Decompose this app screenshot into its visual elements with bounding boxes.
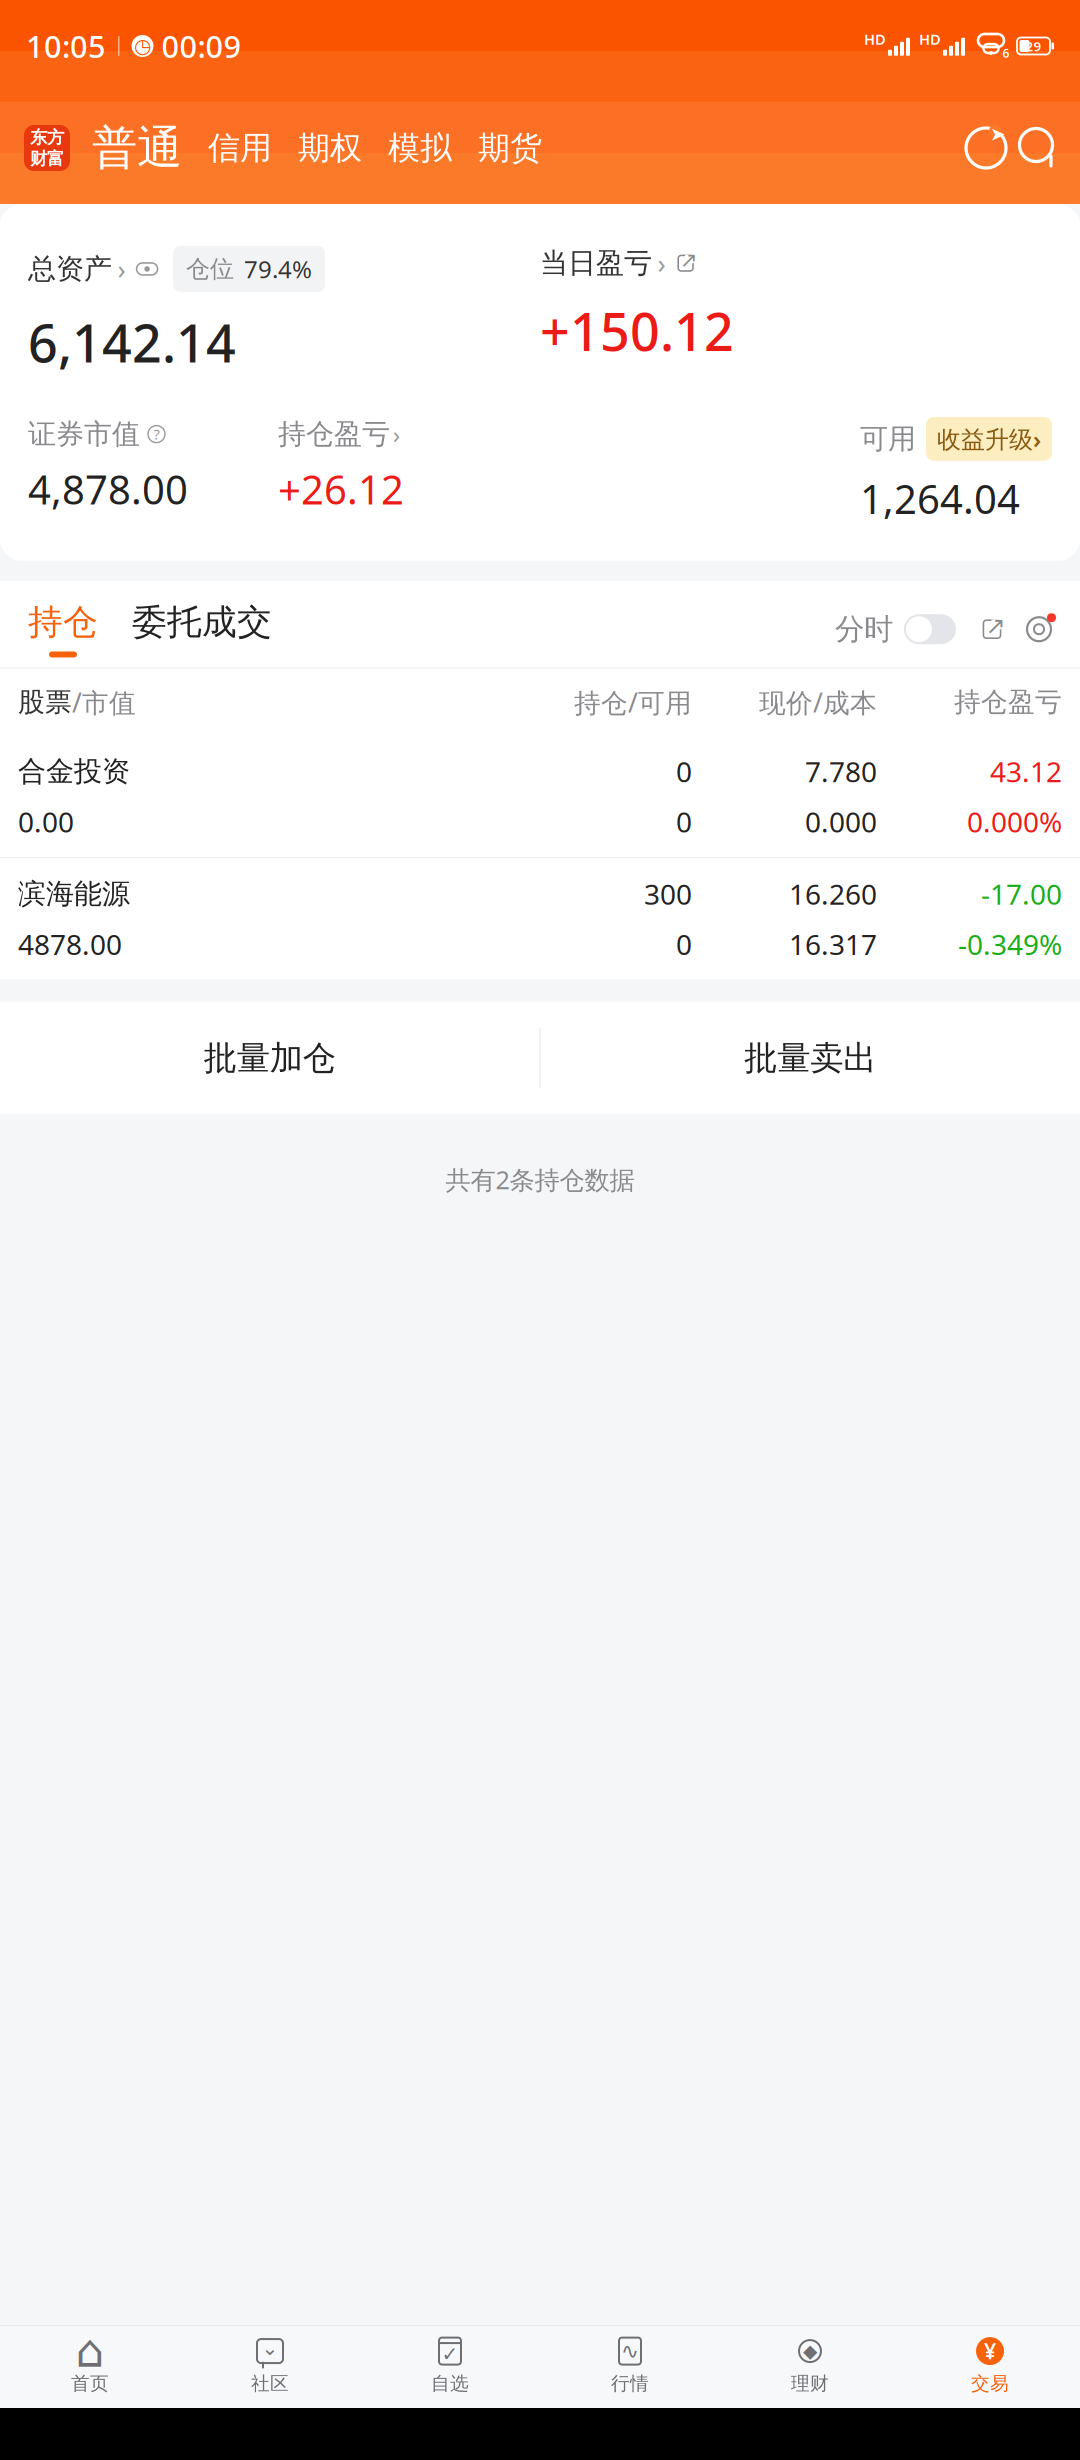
staticText: 股票 — [18, 686, 72, 719]
staticText: 当日盈亏 — [540, 246, 652, 280]
button[interactable]: 分时 — [835, 611, 956, 647]
staticText: 总资产 — [28, 252, 112, 286]
staticText: -0.349% — [958, 925, 1062, 963]
staticText: 持仓 — [28, 601, 98, 643]
staticText: 行情 — [611, 2372, 649, 2395]
staticText: 0 — [676, 925, 692, 963]
staticText: ◆ — [803, 2340, 817, 2362]
staticText: ∿ — [621, 2339, 639, 2363]
staticText: 批量卖出 — [744, 1038, 876, 1078]
button[interactable]: 持仓盈亏 — [278, 417, 400, 451]
staticText: ◷ — [134, 35, 151, 57]
staticText: ↗ — [680, 248, 698, 272]
staticText: 证券市值 — [28, 417, 140, 451]
staticText: 期货 — [478, 128, 542, 168]
staticText: 300 — [644, 875, 692, 912]
staticText: 79.4% — [244, 253, 312, 285]
staticText: 43.12 — [990, 753, 1062, 790]
button[interactable]: 批量加仓 — [0, 1002, 539, 1114]
staticText: 合金投资 — [18, 754, 130, 789]
button[interactable]: 委托成交 — [106, 601, 272, 657]
button[interactable]: 批量卖出 — [540, 1002, 1080, 1114]
button[interactable]: 期货 — [452, 128, 542, 168]
staticText: 7.780 — [805, 753, 877, 790]
staticText: 委托成交 — [132, 601, 272, 643]
button[interactable]: ¥ — [900, 2326, 1080, 2402]
button[interactable]: 搜索 — [1012, 122, 1064, 174]
staticText: 持仓/可用 — [574, 684, 692, 720]
button[interactable]: 普通 — [70, 120, 182, 176]
staticText: 现价/成本 — [759, 684, 877, 720]
staticText: 东方 — [30, 127, 64, 148]
button[interactable]: 滨海能源 — [0, 858, 1080, 980]
staticText: 6 — [1002, 45, 1009, 61]
staticText: 4,878.00 — [28, 462, 188, 515]
button[interactable]: ⌄ — [180, 2326, 360, 2402]
staticText: HD — [864, 29, 886, 49]
staticText: 首页 — [71, 2372, 109, 2395]
staticText: 社区 — [251, 2372, 289, 2395]
staticText: ? — [153, 424, 159, 444]
staticText: › — [657, 245, 665, 281]
button[interactable]: 持仓 — [0, 601, 106, 657]
staticText: 共有2条持仓数据 — [445, 1163, 634, 1196]
button[interactable]: 设置 — [1024, 614, 1054, 644]
button[interactable]: ∿ — [540, 2326, 720, 2402]
button[interactable]: 信用 — [182, 128, 272, 168]
staticText: 分时 — [835, 611, 893, 647]
button[interactable]: 分享 — [978, 615, 1006, 643]
staticText: 4878.00 — [18, 925, 122, 963]
staticText: 29 — [1025, 37, 1041, 55]
staticText: 可用 — [860, 422, 916, 456]
staticText: 0.000% — [967, 803, 1062, 840]
staticText: 信用 — [208, 128, 272, 168]
button[interactable]: ✓ — [360, 2326, 540, 2402]
staticText: 理财 — [791, 2372, 829, 2395]
staticText: +26.12 — [278, 462, 404, 515]
staticText: 期权 — [298, 128, 362, 168]
button[interactable]: ◆ — [720, 2326, 900, 2402]
button[interactable]: ⌂ — [0, 2326, 180, 2402]
staticText: +150.12 — [540, 296, 734, 365]
staticText: ⌄ — [261, 2337, 278, 2359]
staticText: 模拟 — [388, 128, 452, 168]
button[interactable]: 刷新 — [960, 122, 1012, 174]
staticText: 0.00 — [18, 803, 74, 840]
staticText: 0 — [676, 803, 692, 840]
staticText: 交易 — [971, 2372, 1009, 2395]
staticText: 滨海能源 — [18, 877, 130, 911]
staticText: 收益升级› — [937, 423, 1041, 455]
button[interactable]: 期权 — [272, 128, 362, 168]
staticText: 普通 — [92, 120, 182, 176]
staticText: › — [117, 251, 125, 287]
staticText: ➤ — [990, 123, 1006, 145]
staticText: 16.260 — [789, 875, 877, 912]
staticText: › — [393, 418, 400, 450]
button[interactable]: 总资产 — [28, 246, 325, 292]
staticText: ✓ — [441, 2343, 458, 2365]
staticText: 16.317 — [789, 925, 877, 963]
staticText: 0 — [676, 753, 692, 790]
staticText: 10:05 — [26, 26, 106, 66]
staticText: 仓位 — [186, 254, 234, 284]
staticText: 1,264.04 — [860, 472, 1020, 525]
button[interactable]: 合金投资 — [0, 736, 1080, 857]
staticText: /市值 — [72, 684, 136, 720]
staticText: HD — [919, 29, 941, 49]
button[interactable]: 当日盈亏 — [540, 246, 698, 280]
staticText: 6,142.14 — [28, 308, 236, 377]
button[interactable]: 模拟 — [362, 128, 452, 168]
staticText: 0.000 — [805, 803, 877, 840]
staticText: -17.00 — [981, 875, 1062, 912]
staticText: ⌂ — [75, 2325, 104, 2377]
button[interactable]: 收益升级› — [926, 417, 1052, 461]
staticText: ¥ — [984, 2337, 996, 2365]
staticText: 持仓盈亏 — [954, 686, 1062, 719]
staticText: ↗ — [985, 612, 1005, 639]
staticText: 批量加仓 — [204, 1038, 336, 1078]
staticText: 00:09 — [153, 26, 241, 66]
staticText: 持仓盈亏 — [278, 417, 390, 451]
staticText: 自选 — [431, 2372, 469, 2395]
staticText: 财富 — [30, 148, 64, 169]
